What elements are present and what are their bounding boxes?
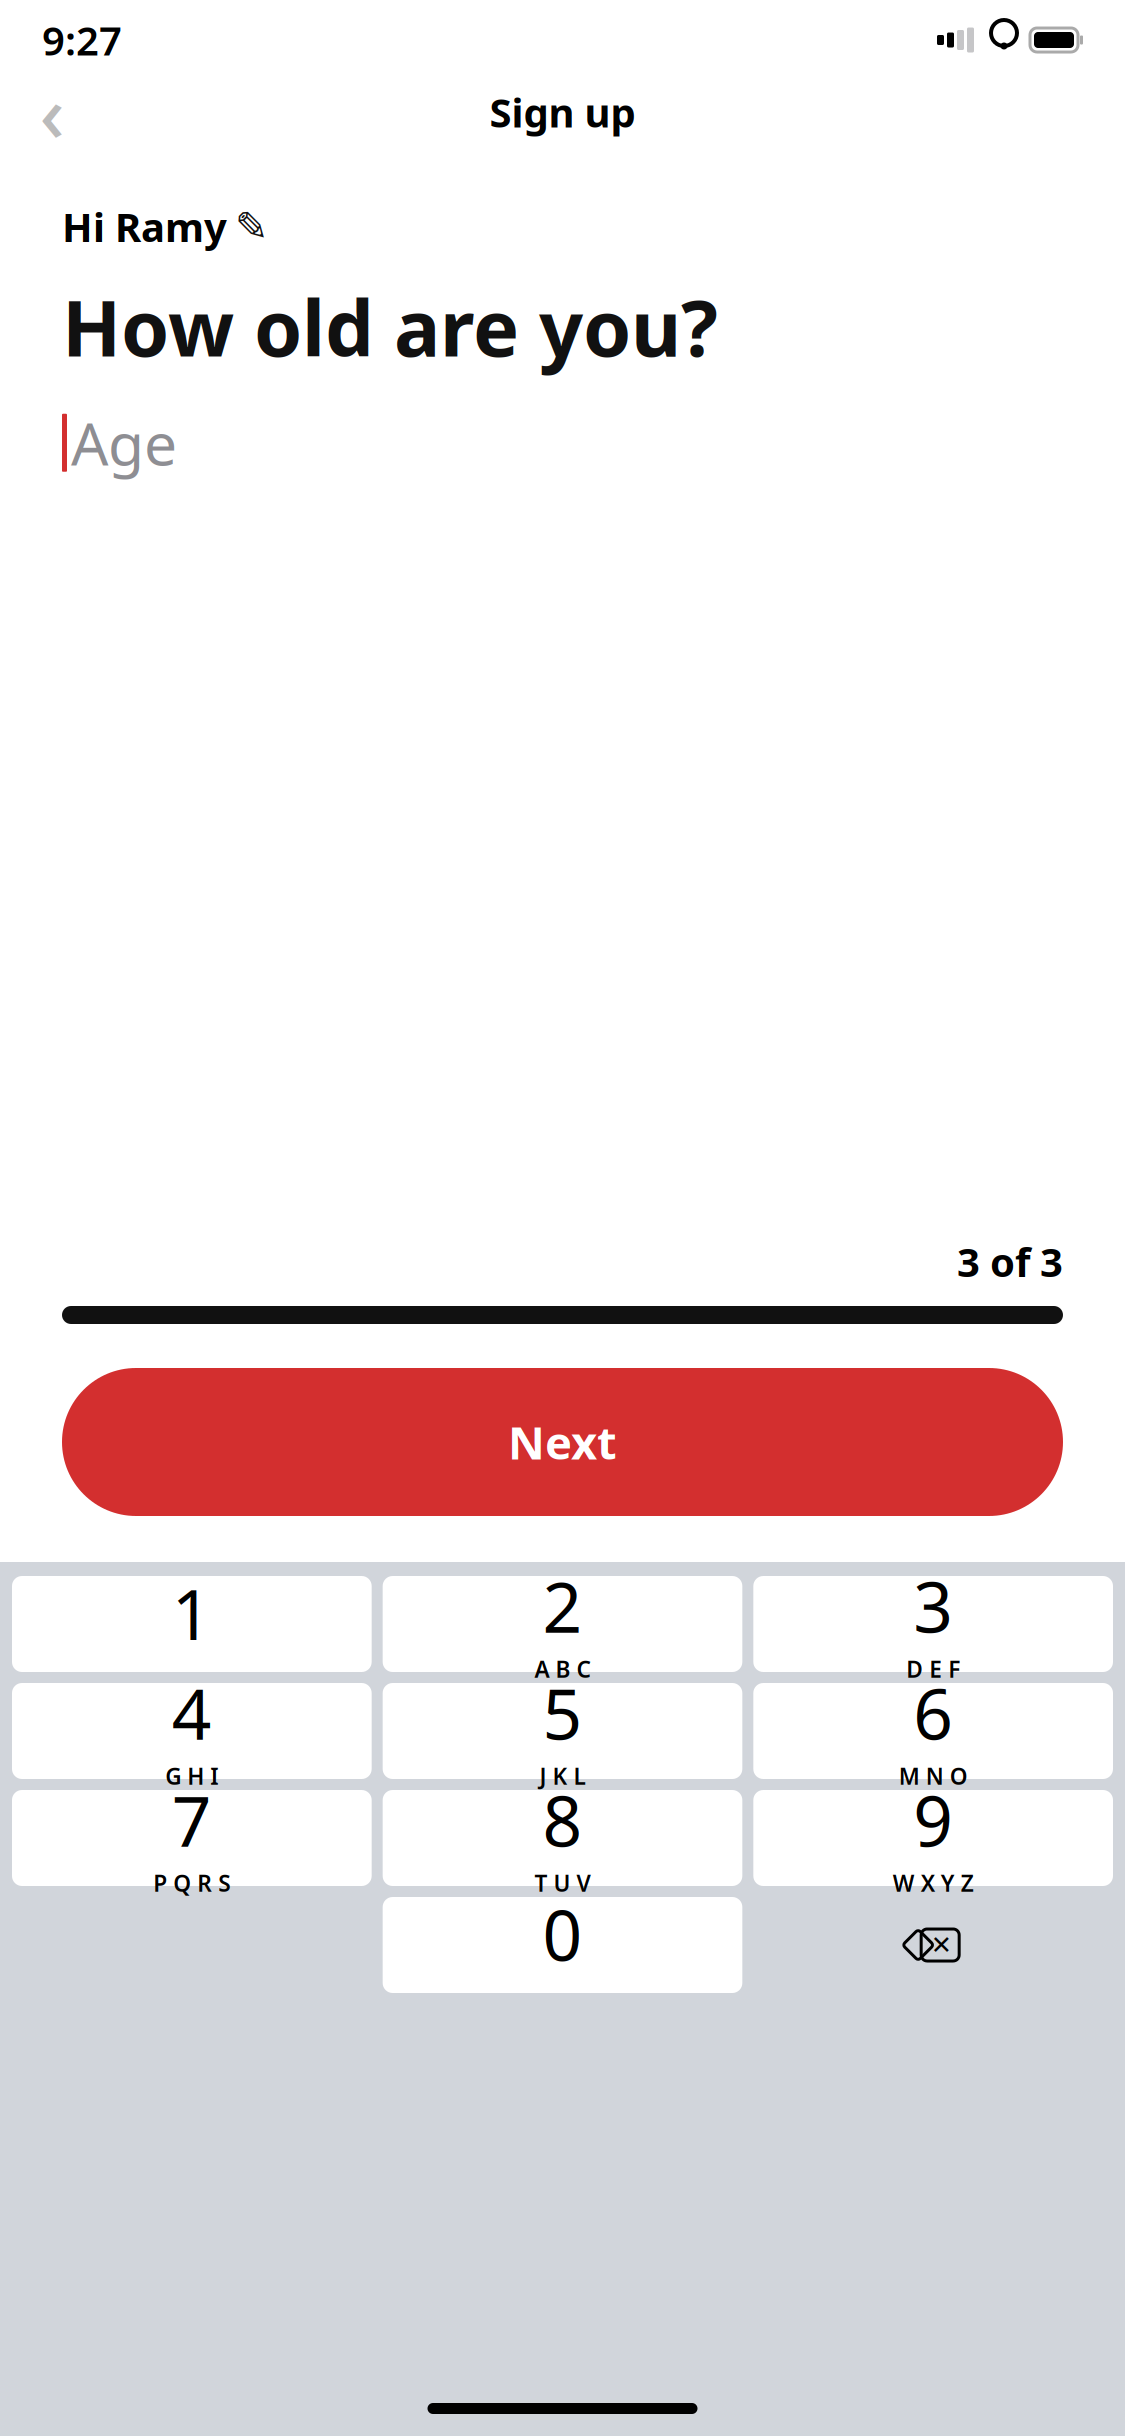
- button[interactable]: Hi Ramy: [62, 200, 269, 253]
- staticText: ✕: [931, 1931, 952, 1959]
- button[interactable]: 0: [383, 1897, 742, 1993]
- staticText: 6: [913, 1667, 953, 1759]
- staticText: Next: [508, 1412, 617, 1472]
- staticText: A B C: [534, 1654, 590, 1684]
- button[interactable]: 4: [12, 1683, 372, 1779]
- staticText: 9:27: [42, 13, 122, 66]
- staticText: P Q R S: [153, 1868, 230, 1898]
- staticText: 5: [542, 1667, 582, 1759]
- staticText: M N O: [899, 1761, 968, 1791]
- button[interactable]: 8: [383, 1790, 742, 1886]
- staticText: G H I: [165, 1761, 218, 1791]
- staticText: ‹: [39, 61, 64, 163]
- staticText: How old are you?: [62, 275, 718, 378]
- staticText: W X Y Z: [893, 1868, 974, 1898]
- staticText: 1: [172, 1567, 212, 1659]
- button[interactable]: 1: [12, 1576, 372, 1672]
- button[interactable]: 3: [753, 1576, 1113, 1672]
- button[interactable]: 9: [753, 1790, 1113, 1886]
- button[interactable]: 6: [753, 1683, 1113, 1779]
- staticText: 9: [913, 1774, 953, 1866]
- staticText: 3: [913, 1560, 953, 1652]
- staticText: 8: [542, 1774, 582, 1866]
- button[interactable]: Delete: [753, 1897, 1113, 1993]
- button[interactable]: Back: [22, 82, 82, 142]
- staticText: 2: [542, 1560, 582, 1652]
- staticText: ✎: [235, 204, 269, 249]
- staticText: 3 of 3: [957, 1235, 1063, 1288]
- staticText: D E F: [906, 1654, 960, 1684]
- button[interactable]: Next: [62, 1368, 1063, 1516]
- staticText: T U V: [534, 1868, 590, 1898]
- button[interactable]: 5: [383, 1683, 742, 1779]
- staticText: Hi Ramy: [62, 200, 227, 253]
- staticText: 0: [542, 1888, 582, 1980]
- staticText: Age: [71, 404, 177, 482]
- staticText: Sign up: [489, 85, 635, 138]
- button[interactable]: 2: [383, 1576, 742, 1672]
- staticText: J K L: [539, 1761, 585, 1791]
- button[interactable]: 7: [12, 1790, 372, 1886]
- staticText: 7: [172, 1774, 212, 1866]
- staticText: 4: [172, 1667, 212, 1759]
